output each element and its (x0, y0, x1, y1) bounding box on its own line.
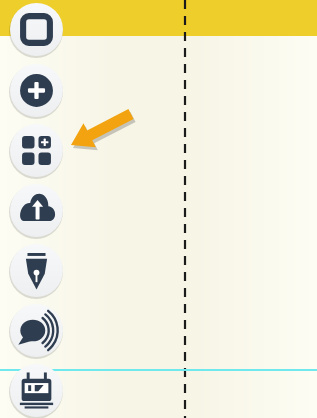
button[interactable]: Upload to cloud (8, 182, 64, 238)
button[interactable]: Calendar (8, 362, 64, 418)
button[interactable]: Sign (8, 242, 64, 298)
button[interactable]: Add (8, 62, 64, 118)
button[interactable]: Add widget (8, 122, 64, 178)
button[interactable]: Comment (8, 302, 64, 358)
button[interactable]: Stop (8, 1, 64, 57)
